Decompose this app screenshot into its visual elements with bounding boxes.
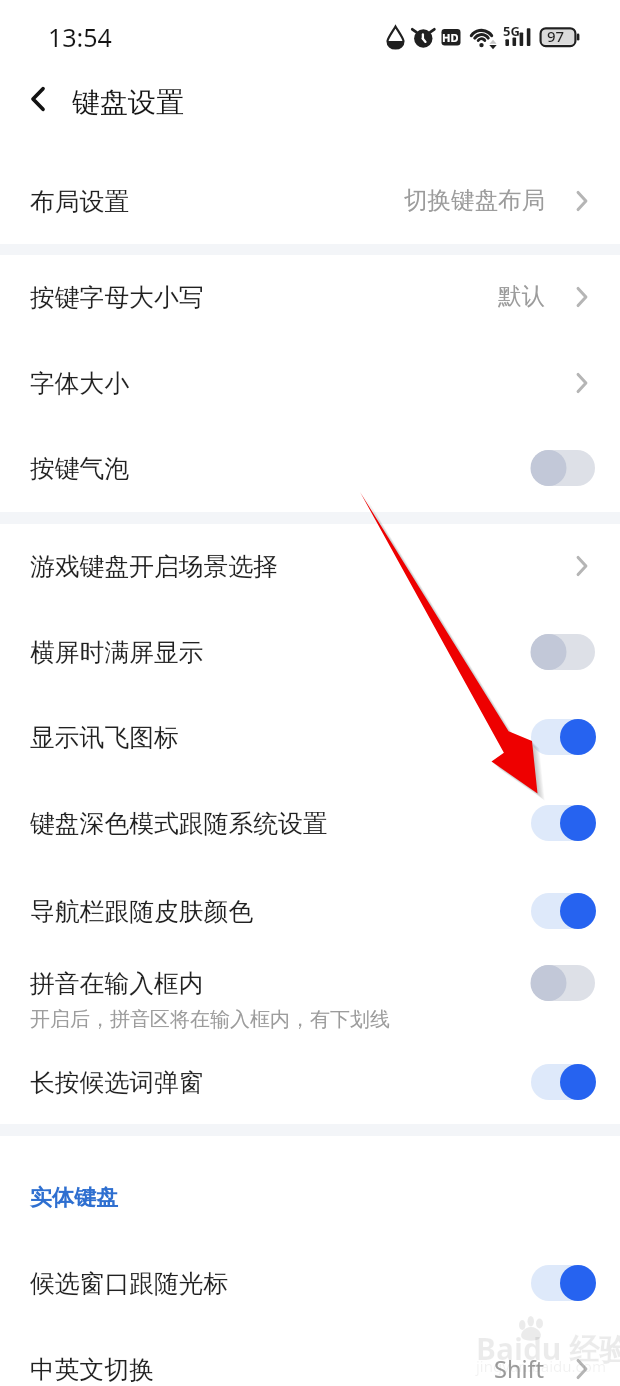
button[interactable] (527, 799, 599, 847)
staticText: 97 (547, 26, 565, 46)
button[interactable] (527, 628, 599, 676)
button[interactable]: 按键气泡 (0, 427, 620, 512)
button[interactable] (527, 713, 599, 761)
button[interactable]: 导航栏跟随皮肤颜色 (0, 867, 620, 950)
button[interactable] (527, 1259, 599, 1307)
staticText: 按键气泡 (30, 453, 130, 484)
staticText: 默认 (498, 281, 545, 311)
button[interactable]: 中英文切换 (0, 1326, 620, 1386)
staticText: 导航栏跟随皮肤颜色 (30, 896, 254, 927)
button[interactable]: 长按候选词弹窗 (0, 1040, 620, 1124)
button[interactable]: 显示讯飞图标 (0, 696, 620, 781)
staticText: 按键字母大小写 (30, 282, 204, 313)
staticText: 13:54 (48, 20, 112, 54)
staticText: 拼音在输入框内 (30, 968, 204, 999)
staticText: 实体键盘 (30, 1184, 118, 1212)
button[interactable]: 候选窗口跟随光标 (0, 1240, 620, 1326)
staticText: 开启后，拼音区将在输入框内，有下划线 (30, 1007, 390, 1032)
staticText: 字体大小 (30, 368, 130, 399)
staticText: Baidu 经验 (476, 1328, 620, 1369)
button[interactable] (527, 959, 599, 1007)
staticText: HD (442, 30, 459, 45)
button[interactable] (527, 887, 599, 935)
staticText: 键盘深色模式跟随系统设置 (30, 808, 328, 839)
button[interactable]: 按键字母大小写 (0, 255, 620, 341)
staticText: 5G (503, 22, 520, 40)
button[interactable] (527, 444, 599, 492)
staticText: 横屏时满屏显示 (30, 637, 204, 668)
button[interactable]: 游戏键盘开启场景选择 (0, 524, 620, 610)
button[interactable]: 布局设置 (0, 140, 620, 244)
button[interactable]: 键盘深色模式跟随系统设置 (0, 781, 620, 867)
button[interactable]: 字体大小 (0, 341, 620, 427)
button[interactable]: 横屏时满屏显示 (0, 610, 620, 696)
staticText: 候选窗口跟随光标 (30, 1268, 229, 1299)
button[interactable]: Back (17, 78, 59, 120)
staticText: 游戏键盘开启场景选择 (30, 551, 278, 582)
staticText: 显示讯飞图标 (30, 722, 179, 753)
staticText: 键盘设置 (72, 85, 184, 120)
button[interactable] (527, 1058, 599, 1106)
staticText: 长按候选词弹窗 (30, 1067, 204, 1098)
staticText: Shift (494, 1353, 545, 1385)
staticText: 切换键盘布局 (404, 185, 545, 215)
staticText: 布局设置 (30, 186, 130, 217)
staticText: jingyan.baidu.com (476, 1356, 606, 1376)
staticText: 中英文切换 (30, 1354, 154, 1385)
button[interactable]: 拼音在输入框内 (0, 950, 620, 1040)
